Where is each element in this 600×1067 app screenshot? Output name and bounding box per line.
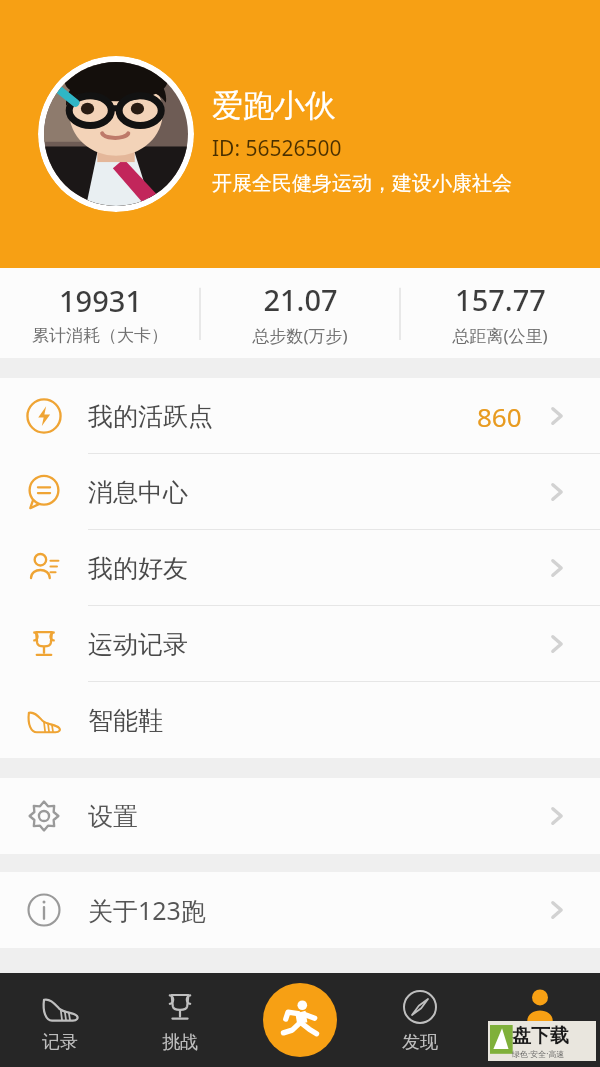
staticText: 我的好友 [88,553,188,584]
staticText: 盘下载 [512,1024,569,1048]
button[interactable]: 我的好友 [0,530,600,606]
staticText: 总距离(公里) [452,324,548,347]
button[interactable]: 挑战 [120,973,240,1067]
staticText: ID: 56526500 [212,134,342,163]
staticText: 消息中心 [88,477,188,508]
button[interactable]: Start run [263,983,337,1057]
staticText: 智能鞋 [88,705,163,736]
staticText: 挑战 [162,1031,198,1054]
button[interactable]: 21.07 [200,268,400,358]
staticText: 21.07 [263,280,338,319]
button[interactable]: 智能鞋 [0,682,600,758]
button[interactable]: Profile photo [38,56,194,212]
button[interactable]: 发现 [360,973,480,1067]
staticText: 运动记录 [88,629,188,660]
button[interactable]: 运动记录 [0,606,600,682]
staticText: 发现 [402,1031,438,1054]
staticText: 关于123跑 [88,893,206,927]
staticText: 总步数(万步) [252,324,348,347]
staticText: 我的 [522,1031,558,1054]
staticText: 157.77 [455,280,546,319]
staticText: 设置 [88,801,138,832]
staticText: 860 [477,399,522,434]
staticText: 爱跑小伙 [212,86,336,125]
staticText: 累计消耗（大卡） [32,325,168,346]
staticText: 记录 [42,1031,78,1054]
button[interactable]: 记录 [0,973,120,1067]
button[interactable]: 消息中心 [0,454,600,530]
button[interactable]: 关于123跑 [0,872,600,948]
button[interactable]: 我的 [480,973,600,1067]
button[interactable]: 157.77 [400,268,600,358]
staticText: 绿色·安全·高速 [512,1048,565,1059]
staticText: 我的活跃点 [88,401,213,432]
button[interactable]: 设置 [0,778,600,854]
staticText: 19931 [59,281,142,320]
button[interactable]: 我的活跃点 [0,378,600,454]
button[interactable]: 19931 [0,268,200,358]
staticText: 开展全民健身运动，建设小康社会 [212,171,512,196]
